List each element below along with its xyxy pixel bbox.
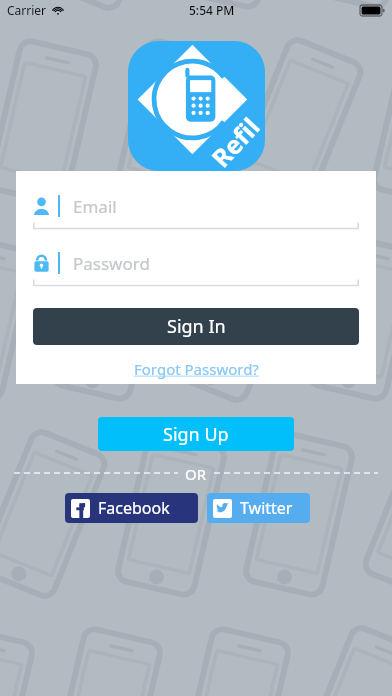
button[interactable]: Sign In <box>33 308 359 345</box>
button[interactable]: Sign Up <box>98 417 294 451</box>
staticText: OR <box>185 464 207 482</box>
staticText: Facebook <box>98 497 170 519</box>
button[interactable]: Facebook <box>65 493 198 523</box>
button[interactable]: Twitter <box>207 493 310 523</box>
staticText: Twitter <box>240 497 293 519</box>
staticText: Forgot Password? <box>134 359 259 379</box>
staticText: 5:54 PM <box>189 2 235 18</box>
staticText: Carrier <box>7 2 47 18</box>
button[interactable]: Email field <box>33 188 359 231</box>
staticText: Sign Up <box>163 422 229 447</box>
other: Password field <box>33 254 50 272</box>
staticText: Email <box>73 195 117 218</box>
staticText: Password <box>73 252 150 275</box>
staticText: Sign In <box>167 314 226 339</box>
other: Email field <box>33 197 50 215</box>
button[interactable]: Forgot Password? <box>130 357 263 381</box>
button[interactable]: Password field <box>33 245 359 288</box>
staticText: Refil <box>203 110 267 174</box>
